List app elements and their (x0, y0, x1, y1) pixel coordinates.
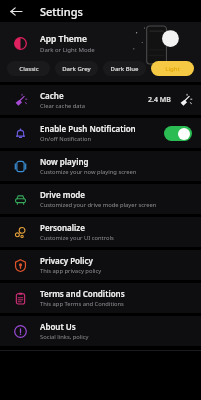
staticText: About Us (40, 321, 76, 332)
button[interactable]: App Theme (0, 22, 201, 82)
staticText: Social links, policy (40, 333, 89, 341)
button[interactable]: Privacy Policy (0, 250, 201, 280)
button[interactable]: Cache (0, 85, 201, 115)
staticText: Cache (40, 90, 64, 101)
button[interactable]: Toggle push notification (164, 126, 192, 141)
staticText: This app privacy policy (40, 267, 102, 275)
button[interactable]: Classic (7, 61, 50, 76)
button[interactable]: Terms and Conditions (0, 283, 201, 313)
staticText: Customized your drive mode player screen (40, 201, 157, 209)
staticText: Terms and Conditions (40, 288, 125, 299)
staticText: Now playing (40, 156, 89, 167)
button[interactable]: Enable Push Notification (0, 118, 201, 148)
button[interactable]: Back (6, 1, 26, 21)
staticText: Clear cache data (40, 102, 85, 110)
button[interactable]: Dark Blue (103, 61, 146, 76)
button[interactable]: Drive mode (0, 184, 201, 214)
staticText: Personalize (40, 222, 85, 233)
button[interactable]: Now playing (0, 151, 201, 181)
staticText: Dark Blue (110, 65, 139, 73)
staticText: On/off Notification (40, 135, 91, 143)
staticText: Settings (40, 4, 83, 19)
button[interactable]: About Us (0, 316, 201, 346)
staticText: Dark Grey (62, 65, 91, 73)
staticText: App Theme (40, 33, 87, 45)
staticText: Customize your UI controls (40, 234, 114, 242)
staticText: This app Terms and Conditions (40, 300, 124, 308)
staticText: Drive mode (40, 189, 86, 200)
staticText: Classic (19, 65, 39, 73)
button[interactable]: Dark Grey (55, 61, 98, 76)
button[interactable]: Personalize (0, 217, 201, 247)
button[interactable]: Light (151, 61, 194, 76)
staticText: Enable Push Notification (40, 123, 136, 134)
staticText: 2.4 MB (148, 95, 171, 105)
staticText: Customize your now playing screen (40, 168, 137, 176)
staticText: Dark or Light Mode (40, 46, 95, 54)
staticText: Privacy Policy (40, 255, 93, 266)
staticText: Light (165, 65, 180, 73)
